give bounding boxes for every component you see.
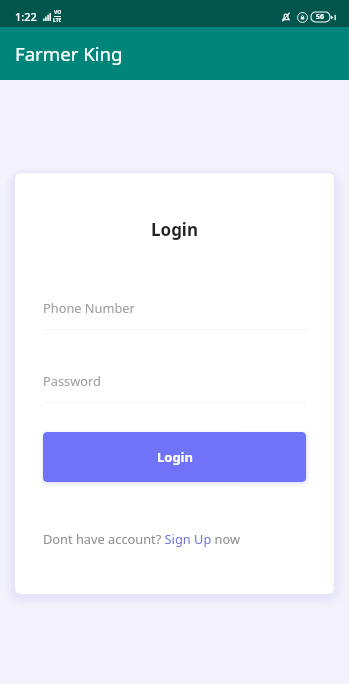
staticText: Password — [43, 372, 101, 389]
staticText: 56 — [316, 12, 325, 22]
staticText: Login — [157, 448, 193, 466]
other: Screen lock — [297, 12, 308, 23]
staticText: 1:22 — [15, 9, 37, 24]
other: Battery 56 percent, charging — [311, 12, 337, 22]
staticText: Phone Number — [43, 299, 135, 316]
button[interactable]: Dont have account? Sign Up now — [43, 530, 306, 547]
staticText: Dont have account? Sign Up now — [43, 530, 241, 547]
other: Silent mode — [280, 11, 292, 23]
button[interactable]: Password — [43, 372, 306, 403]
staticText: VO — [54, 9, 62, 16]
staticText: Farmer King — [15, 41, 123, 66]
staticText: LTE — [53, 17, 62, 24]
staticText: Login — [15, 218, 334, 241]
other: Mobile signal — [43, 13, 51, 21]
button[interactable]: Phone Number — [43, 299, 306, 330]
button[interactable]: Login — [43, 432, 306, 482]
